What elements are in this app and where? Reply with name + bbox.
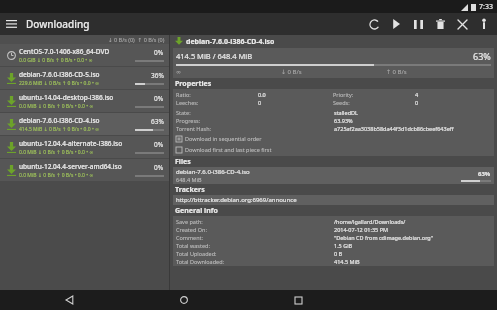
button[interactable]: ubuntu-12.04.4-alternate-i386.iso — [0, 136, 169, 158]
staticText: 0.0 GiB ↓ 0 B/s ↑ 0 B/s • 0.0 • ∞ — [19, 57, 93, 64]
staticText: 63.93% — [334, 117, 353, 124]
staticText: 0% — [154, 140, 164, 149]
button[interactable]: debian-7.6.0-i386-CD-5.iso — [0, 67, 169, 89]
button[interactable]: Close — [451, 13, 473, 35]
staticText: 414.5 MiB — [334, 258, 360, 265]
button[interactable]: Resume — [385, 13, 407, 35]
button[interactable]: Download first and last piece first — [176, 144, 491, 155]
staticText: Total Downloaded: — [176, 258, 334, 265]
staticText: Comment: — [176, 234, 334, 241]
button[interactable]: debian-7.6.0-i386-CD-4.iso — [176, 168, 491, 183]
staticText: 0.0 MiB ↓ 0 B/s ↑ 0 B/s • 0.0 • ∞ — [19, 103, 94, 110]
button[interactable]: Recent apps — [288, 290, 308, 310]
staticText: http://bttracker.debian.org:6969/announc… — [176, 196, 297, 204]
button[interactable]: Open navigation drawer — [0, 13, 22, 35]
staticText: 0 — [258, 99, 262, 106]
staticText: Files — [175, 157, 191, 167]
staticText: /home/lgallard/Downloads/ — [334, 218, 406, 225]
staticText: 0% — [154, 163, 164, 172]
button[interactable]: Refresh — [363, 13, 385, 35]
staticText: Leeches: — [176, 99, 258, 106]
staticText: 63% — [478, 170, 491, 178]
staticText: 0 — [415, 99, 419, 106]
button[interactable]: debian-7.6.0-i386-CD-4.iso — [0, 113, 169, 135]
staticText: 36% — [151, 71, 164, 80]
staticText: 414.5 MiB / 648.4 MiB — [176, 51, 253, 61]
staticText: debian-7.6.0-i386-CD-4.iso — [186, 37, 275, 47]
staticText: Total wasted: — [176, 242, 334, 249]
staticText: debian-7.6.0-i386-CD-5.iso — [19, 70, 100, 79]
staticText: Seeds: — [333, 99, 415, 106]
staticText: Download in sequential order — [185, 135, 262, 142]
button[interactable]: Download in sequential order — [176, 133, 491, 144]
staticText: 0.0 — [258, 91, 266, 98]
staticText: ∞ — [176, 68, 281, 75]
staticText: Download first and last piece first — [185, 146, 272, 153]
staticText: Save path: — [176, 218, 334, 225]
button[interactable]: Delete — [429, 13, 451, 35]
staticText: 0.0 MiB ↓ 0 B/s ↑ 0 B/s • 0.0 • ∞ — [19, 172, 94, 179]
button[interactable]: Home — [174, 290, 194, 310]
staticText: Properties — [175, 79, 212, 89]
staticText: a725af2aa3038b58da44f3d1dcb86cbeef643eff — [334, 125, 454, 132]
button[interactable]: Info — [473, 13, 495, 35]
staticText: 63% — [473, 50, 491, 62]
staticText: 0% — [154, 94, 164, 103]
staticText: CentOS-7.0-1406-x86_64-DVD — [19, 47, 110, 56]
staticText: 648.4 MiB — [176, 176, 202, 183]
staticText: ↑ 0 B/s — [386, 68, 491, 76]
button[interactable]: Back — [60, 290, 80, 310]
staticText: General info — [175, 206, 218, 216]
staticText: State: — [176, 109, 334, 116]
staticText: 414.5 MiB ↓ 0 B/s ↑ 0 B/s • 0.0 • ∞ — [19, 126, 100, 133]
staticText: Torrent Hash: — [176, 125, 334, 132]
staticText: Created On: — [176, 226, 334, 233]
button[interactable]: http://bttracker.debian.org:6969/announc… — [176, 196, 491, 204]
staticText: ↓ 0 B/s — [281, 68, 386, 76]
staticText: "Debian CD from cdimage.debian.org" — [334, 234, 433, 241]
staticText: 0 B — [334, 250, 343, 257]
staticText: 0.0 MiB ↓ 0 B/s ↑ 0 B/s • 0.0 • ∞ — [19, 149, 94, 156]
staticText: 0% — [154, 48, 164, 57]
staticText: 229.6 MiB ↓ 0 B/s ↑ 0 B/s • 0.0 • ∞ — [19, 80, 100, 87]
staticText: 2014-07-12 01:35 PM — [334, 226, 388, 233]
staticText: stalledDL — [334, 109, 358, 116]
staticText: Downloading — [26, 17, 90, 31]
staticText: Total Uploaded: — [176, 250, 334, 257]
staticText: 4 — [415, 91, 419, 98]
staticText: 63% — [151, 117, 164, 126]
button[interactable]: ubuntu-12.04.4-server-amd64.iso — [0, 159, 169, 181]
staticText: Progress: — [176, 117, 334, 124]
staticText: ubuntu-12.04.4-alternate-i386.iso — [19, 139, 123, 148]
button[interactable]: ubuntu-14.04-desktop-i386.iso — [0, 90, 169, 112]
staticText: 7:33 — [479, 2, 493, 12]
staticText: Ratio: — [176, 91, 258, 98]
staticText: debian-7.6.0-i386-CD-4.iso — [176, 168, 250, 176]
staticText: ↓ 0 B/s (0) ↑ 0 B/s (0) — [108, 36, 165, 43]
staticText: 1.5 GiB — [334, 242, 353, 249]
staticText: ubuntu-14.04-desktop-i386.iso — [19, 93, 114, 102]
staticText: ubuntu-12.04.4-server-amd64.iso — [19, 162, 122, 171]
staticText: Priority: — [333, 91, 415, 98]
staticText: debian-7.6.0-i386-CD-4.iso — [19, 116, 100, 125]
button[interactable]: CentOS-7.0-1406-x86_64-DVD — [0, 44, 169, 66]
staticText: Trackers — [175, 185, 205, 195]
button[interactable]: Pause — [407, 13, 429, 35]
